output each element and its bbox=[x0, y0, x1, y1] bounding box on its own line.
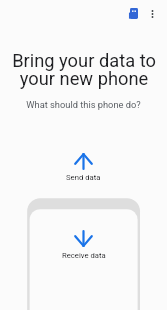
button[interactable]: Receive data bbox=[0, 230, 167, 260]
staticText: Send data bbox=[66, 173, 101, 182]
staticText: Bring your data to your new phone bbox=[12, 50, 156, 90]
button[interactable]: Send data bbox=[0, 153, 167, 182]
staticText: What should this phone do? bbox=[26, 99, 141, 110]
button[interactable]: More options bbox=[141, 2, 164, 25]
staticText: Receive data bbox=[62, 251, 106, 260]
button[interactable]: Tips and support bbox=[122, 1, 146, 25]
